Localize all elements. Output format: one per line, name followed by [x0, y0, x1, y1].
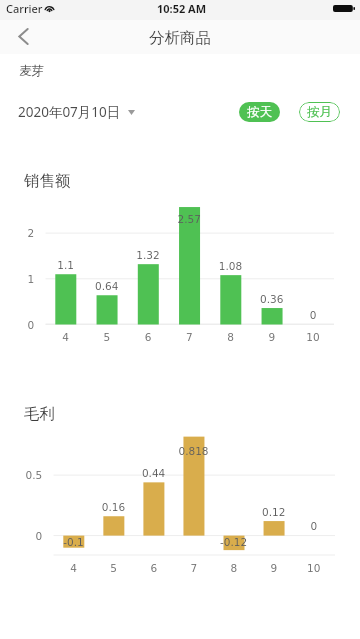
- staticText: Carrier: [6, 1, 43, 16]
- staticText: 毛利: [24, 404, 55, 424]
- button[interactable]: 按天: [239, 102, 280, 122]
- staticText: 2020年07月10日: [18, 103, 121, 121]
- button[interactable]: 按月: [299, 102, 340, 122]
- staticText: 分析商品: [149, 28, 211, 48]
- staticText: 按月: [307, 104, 332, 120]
- button[interactable]: 麦芽: [0, 59, 360, 83]
- staticText: 销售额: [24, 171, 71, 191]
- button[interactable]: 2020年07月10日: [18, 103, 135, 121]
- staticText: 按天: [247, 104, 272, 120]
- button[interactable]: Back: [0, 19, 46, 53]
- staticText: 麦芽: [19, 63, 44, 79]
- staticText: 10:52 AM: [157, 1, 207, 16]
